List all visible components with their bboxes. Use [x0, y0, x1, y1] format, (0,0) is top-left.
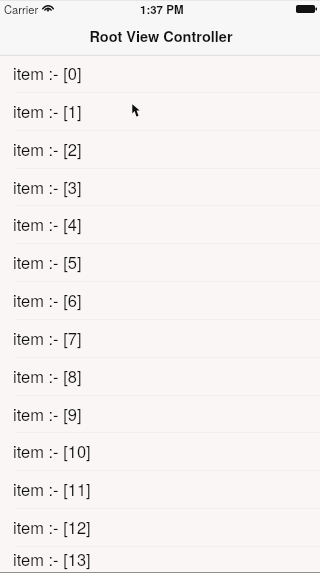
- button[interactable]: item :- [6]: [0, 282, 320, 320]
- staticText: item :- [0]: [13, 61, 82, 85]
- staticText: item :- [5]: [13, 250, 82, 274]
- staticText: item :- [1]: [13, 99, 82, 123]
- button[interactable]: item :- [8]: [0, 358, 320, 396]
- button[interactable]: item :- [5]: [0, 244, 320, 282]
- staticText: item :- [2]: [13, 137, 82, 161]
- staticText: item :- [3]: [13, 175, 82, 199]
- button[interactable]: item :- [9]: [0, 396, 320, 433]
- staticText: Carrier: [4, 1, 39, 17]
- button[interactable]: item :- [13]: [0, 547, 320, 573]
- button[interactable]: item :- [10]: [0, 433, 320, 471]
- button[interactable]: item :- [12]: [0, 509, 320, 547]
- staticText: item :- [10]: [13, 439, 91, 463]
- other: Battery full: [296, 5, 317, 13]
- staticText: item :- [7]: [13, 326, 82, 350]
- staticText: item :- [13]: [13, 547, 91, 570]
- staticText: item :- [9]: [13, 402, 82, 426]
- staticText: Root View Controller: [89, 26, 233, 47]
- staticText: item :- [6]: [13, 288, 82, 312]
- button[interactable]: item :- [3]: [0, 169, 320, 206]
- staticText: item :- [12]: [13, 515, 91, 539]
- button[interactable]: item :- [7]: [0, 320, 320, 358]
- button[interactable]: item :- [1]: [0, 93, 320, 131]
- button[interactable]: item :- [0]: [0, 55, 320, 93]
- button[interactable]: item :- [4]: [0, 206, 320, 244]
- staticText: item :- [11]: [13, 477, 91, 501]
- other: Wi-Fi signal: [43, 5, 53, 12]
- staticText: item :- [8]: [13, 364, 82, 388]
- button[interactable]: item :- [2]: [0, 131, 320, 169]
- staticText: 1:37 PM: [140, 1, 184, 17]
- staticText: item :- [4]: [13, 212, 82, 236]
- button[interactable]: item :- [11]: [0, 471, 320, 509]
